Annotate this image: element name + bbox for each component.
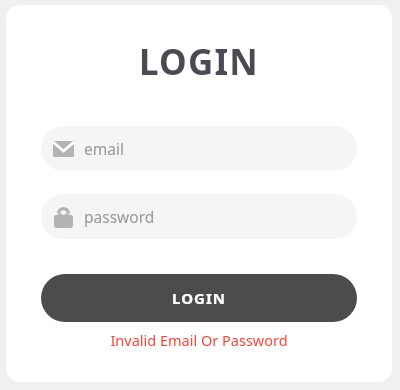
staticText: LOGIN xyxy=(139,38,259,86)
button[interactable]: email xyxy=(41,126,357,171)
staticText: LOGIN xyxy=(172,288,226,308)
staticText: email xyxy=(84,138,124,159)
staticText: password xyxy=(84,206,155,227)
staticText: Invalid Email Or Password xyxy=(110,330,288,350)
button[interactable]: LOGIN xyxy=(41,274,357,322)
button[interactable]: password xyxy=(41,194,357,239)
